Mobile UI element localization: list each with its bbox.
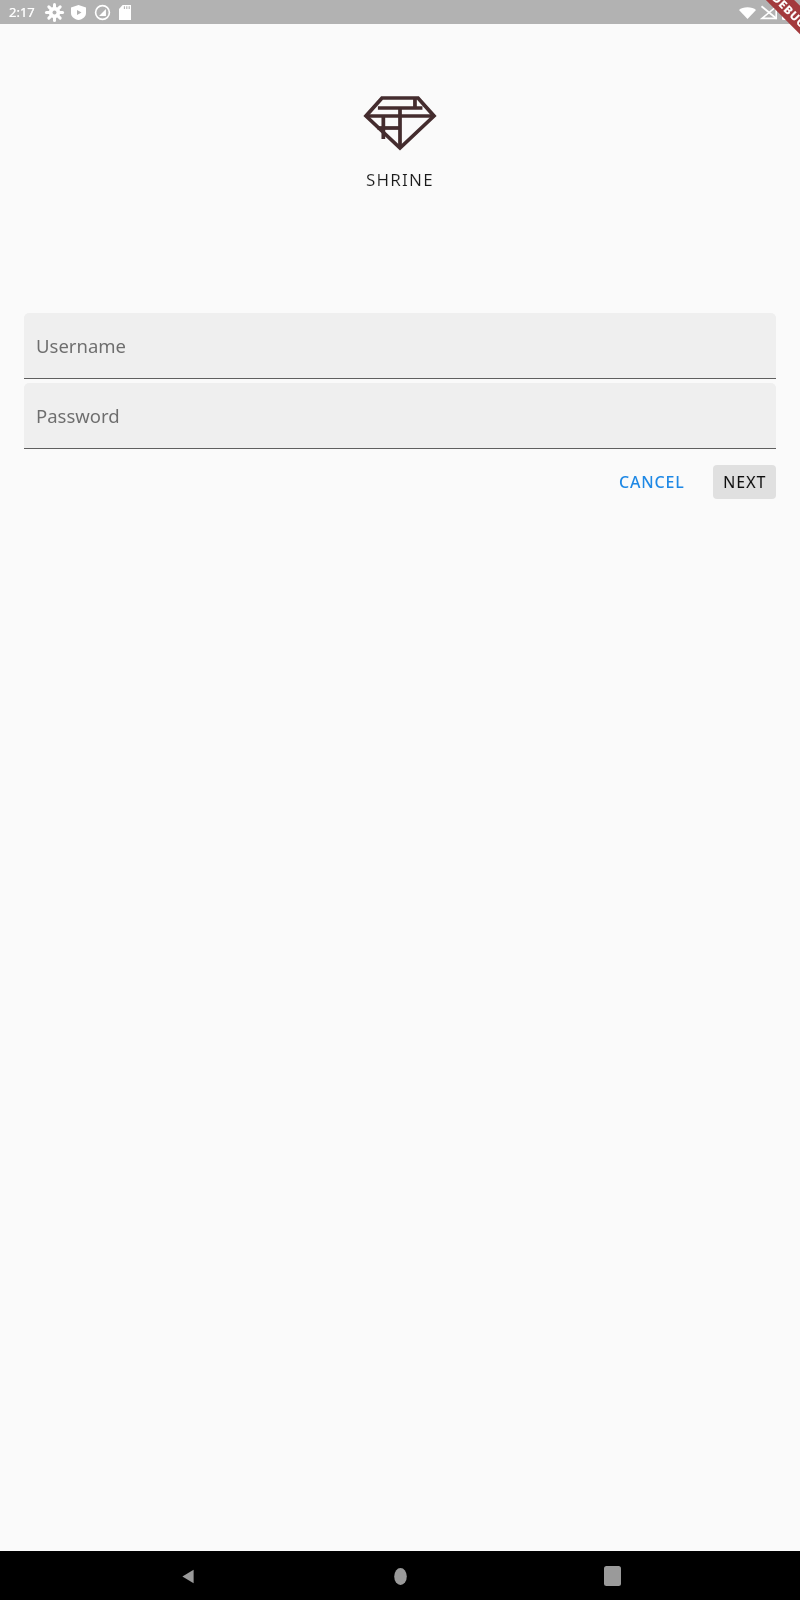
staticText: 2:17 [9, 3, 35, 21]
staticText: DEBUG [769, 0, 800, 31]
staticText: NEXT [723, 471, 767, 493]
staticText: Password [36, 403, 120, 428]
button[interactable]: Recent apps [588, 1552, 636, 1600]
button[interactable]: NEXT [713, 465, 776, 499]
staticText: SHRINE [366, 168, 434, 191]
staticText: CANCEL [619, 471, 685, 493]
button[interactable]: Home [376, 1552, 424, 1600]
button[interactable]: Password [24, 383, 776, 449]
staticText: Username [36, 333, 127, 358]
button[interactable]: CANCEL [609, 462, 695, 502]
button[interactable]: Back [164, 1552, 212, 1600]
button[interactable]: Username [24, 313, 776, 379]
